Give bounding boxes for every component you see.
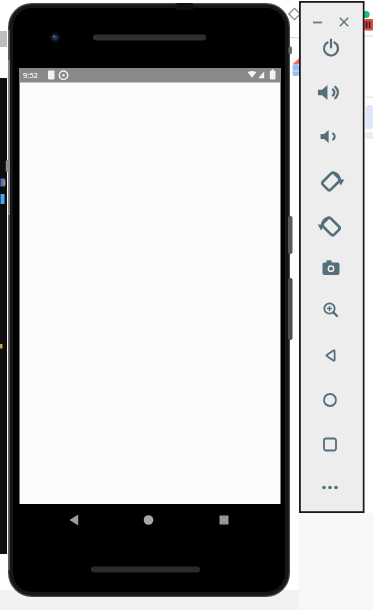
button[interactable] [318, 476, 342, 500]
button[interactable] [55, 504, 93, 536]
button[interactable] [313, 18, 327, 28]
button[interactable] [205, 504, 243, 536]
button[interactable] [318, 125, 342, 149]
button[interactable] [129, 504, 167, 536]
button[interactable] [318, 432, 342, 456]
button[interactable] [319, 36, 343, 60]
button[interactable] [319, 170, 343, 194]
button[interactable] [318, 388, 342, 412]
button[interactable] [318, 81, 342, 105]
button[interactable] [319, 256, 343, 280]
button[interactable] [318, 344, 342, 368]
button[interactable] [319, 213, 343, 237]
staticText: 9:52 [23, 70, 38, 80]
button[interactable] [338, 16, 351, 29]
button[interactable] [318, 298, 342, 322]
